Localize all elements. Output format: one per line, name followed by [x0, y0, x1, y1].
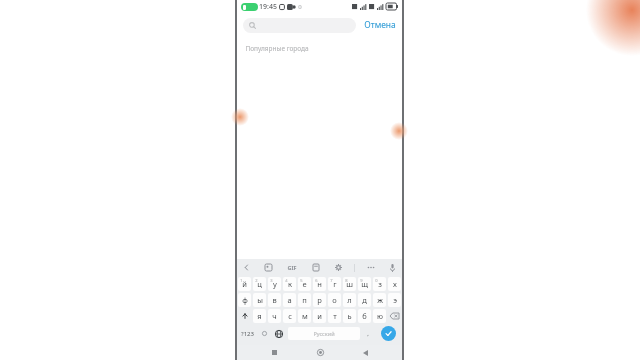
staticText: 0 — [298, 3, 302, 11]
button[interactable]: Enter — [381, 326, 396, 341]
button[interactable]: Search — [243, 18, 356, 33]
staticText: я — [257, 311, 262, 321]
button[interactable]: GIF — [284, 264, 300, 271]
staticText: б — [362, 311, 367, 321]
button[interactable]: ч — [268, 309, 281, 323]
button[interactable]: Voice input — [386, 261, 399, 274]
button[interactable]: , — [361, 324, 375, 343]
staticText: у — [273, 279, 277, 289]
button[interactable]: м — [298, 309, 311, 323]
button[interactable]: н — [313, 277, 326, 291]
staticText: 2 — [255, 278, 258, 283]
staticText: з — [378, 279, 382, 289]
staticText: ф — [242, 295, 248, 305]
button[interactable]: Recents — [266, 345, 282, 360]
button[interactable]: э — [388, 293, 401, 307]
button[interactable]: г — [328, 277, 341, 291]
button[interactable]: в — [268, 293, 281, 307]
button[interactable]: ?123 — [237, 324, 257, 343]
button[interactable]: с — [283, 309, 296, 323]
button[interactable]: т — [328, 309, 341, 323]
button[interactable]: Back — [240, 261, 253, 274]
staticText: ?123 — [241, 330, 254, 338]
button[interactable]: Back — [357, 345, 373, 360]
button[interactable]: Home — [312, 345, 328, 360]
staticText: л — [347, 295, 352, 305]
staticText: Отмена — [364, 19, 396, 31]
button[interactable]: ь — [343, 309, 356, 323]
staticText: г — [333, 279, 337, 289]
button[interactable]: а — [283, 293, 296, 307]
button[interactable]: ю — [373, 309, 386, 323]
staticText: ь — [347, 311, 352, 321]
staticText: 5 — [300, 278, 303, 283]
button[interactable]: ж — [373, 293, 386, 307]
button[interactable]: Shift — [238, 309, 251, 323]
button[interactable]: More options — [364, 261, 377, 274]
staticText: Популярные города — [245, 44, 309, 53]
staticText: щ — [361, 279, 368, 289]
button[interactable]: Change language — [271, 324, 287, 343]
button[interactable]: й — [238, 277, 251, 291]
staticText: н — [317, 279, 322, 289]
staticText: р — [317, 295, 322, 305]
button[interactable]: ф — [238, 293, 251, 307]
button[interactable]: у — [268, 277, 281, 291]
staticText: а — [287, 295, 292, 305]
staticText: й — [242, 279, 247, 289]
button[interactable]: б — [358, 309, 371, 323]
staticText: м — [302, 311, 308, 321]
staticText: 1 — [240, 278, 243, 283]
button[interactable]: и — [313, 309, 326, 323]
staticText: о — [332, 295, 337, 305]
staticText: э — [393, 295, 397, 305]
staticText: е — [302, 279, 307, 289]
staticText: 19:45 — [259, 2, 277, 12]
staticText: т — [333, 311, 337, 321]
staticText: ц — [257, 279, 262, 289]
staticText: 8 — [345, 278, 348, 283]
staticText: п — [302, 295, 307, 305]
button[interactable]: Stickers — [262, 261, 275, 274]
button[interactable]: е — [298, 277, 311, 291]
staticText: и — [317, 311, 322, 321]
button[interactable]: Backspace — [388, 309, 401, 323]
staticText: GIF — [287, 264, 297, 271]
staticText: , — [367, 330, 369, 338]
staticText: д — [362, 295, 367, 305]
button[interactable]: д — [358, 293, 371, 307]
staticText: 4 — [285, 278, 288, 283]
staticText: ы — [257, 295, 263, 305]
staticText: Русский — [313, 330, 335, 337]
button[interactable]: ы — [253, 293, 266, 307]
staticText: х — [393, 279, 397, 289]
button[interactable]: ш — [343, 277, 356, 291]
button[interactable]: Settings — [332, 261, 345, 274]
staticText: 3 — [270, 278, 273, 283]
staticText: 0 — [375, 278, 378, 283]
button[interactable]: з — [373, 277, 386, 291]
button[interactable]: Отмена — [362, 16, 398, 34]
staticText: 6 — [315, 278, 318, 283]
staticText: к — [288, 279, 292, 289]
staticText: 7 — [330, 278, 333, 283]
button[interactable]: р — [313, 293, 326, 307]
button[interactable]: я — [253, 309, 266, 323]
button[interactable]: к — [283, 277, 296, 291]
button[interactable]: п — [298, 293, 311, 307]
button[interactable]: л — [343, 293, 356, 307]
staticText: ж — [377, 295, 383, 305]
button[interactable]: щ — [358, 277, 371, 291]
staticText: 9 — [360, 278, 363, 283]
staticText: в — [272, 295, 277, 305]
button[interactable]: Clipboard — [309, 261, 322, 274]
button[interactable]: Русский — [288, 327, 360, 340]
staticText: ш — [346, 279, 353, 289]
button[interactable]: х — [388, 277, 401, 291]
button[interactable]: Emoji — [257, 324, 271, 343]
button[interactable]: о — [328, 293, 341, 307]
other: Search — [249, 22, 256, 29]
button[interactable]: ц — [253, 277, 266, 291]
staticText: ю — [377, 311, 383, 321]
staticText: с — [288, 311, 292, 321]
